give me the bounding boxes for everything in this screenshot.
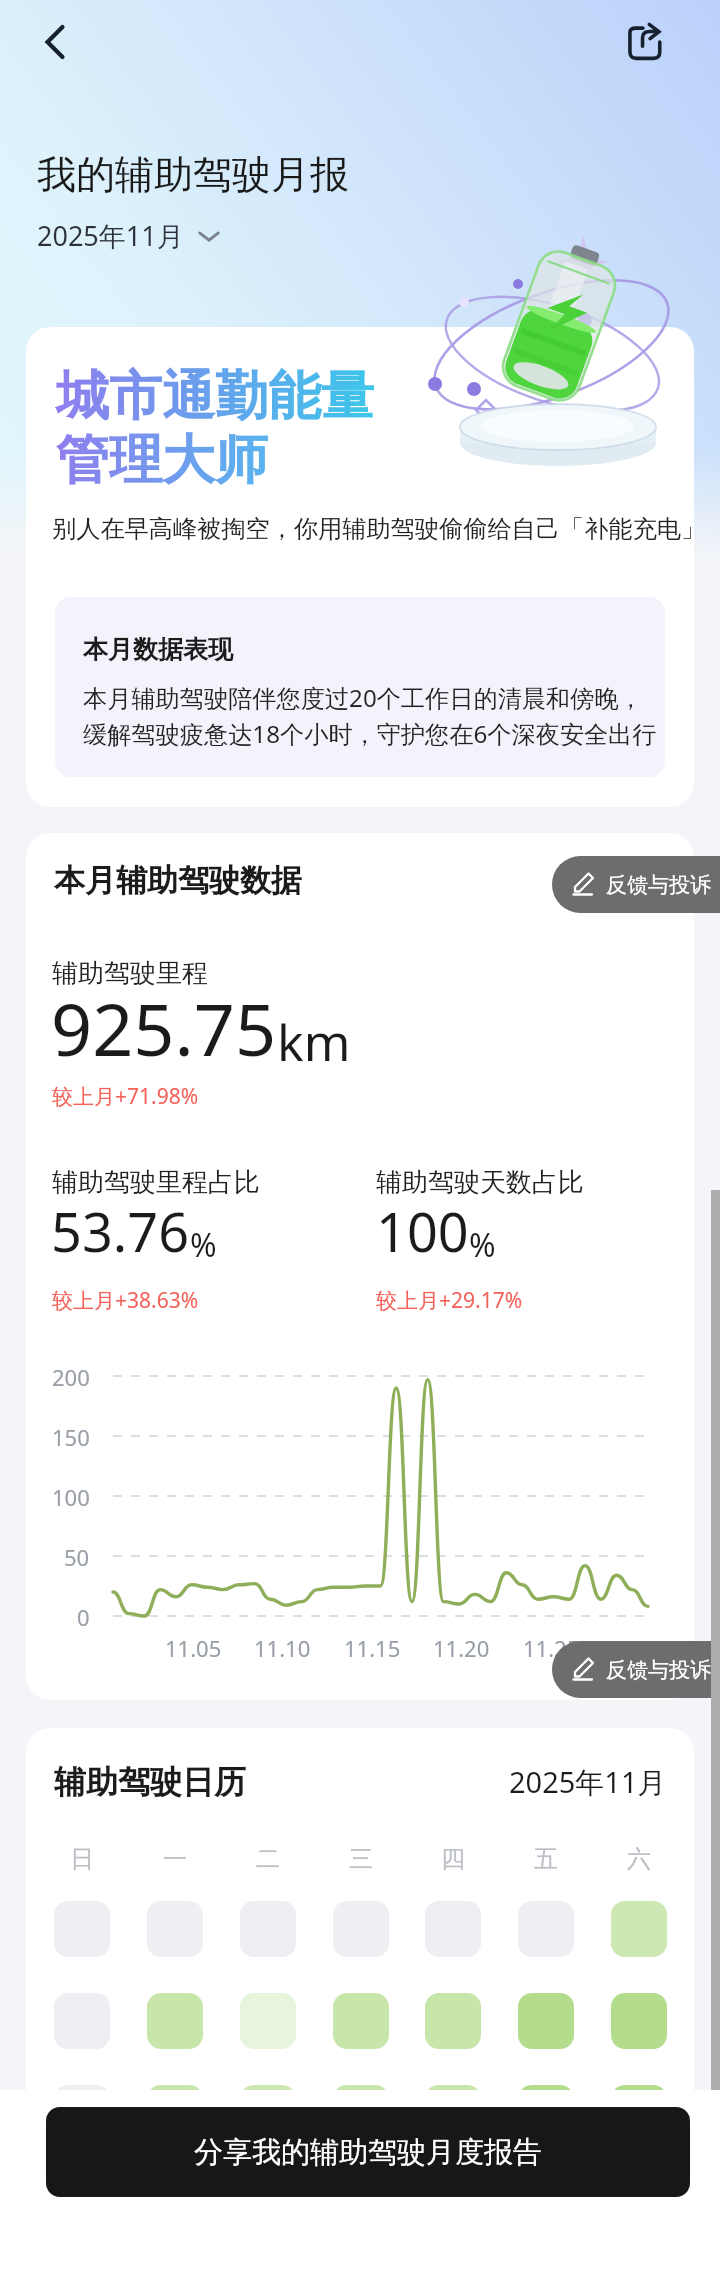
staticText: km <box>277 1008 351 1076</box>
staticText: 二 <box>256 1844 280 1874</box>
staticText: 管理大师 <box>56 427 268 494</box>
button[interactable] <box>518 1993 574 2049</box>
staticText: 缓解驾驶疲惫达18个小时，守护您在6个深夜安全出行 <box>83 717 657 750</box>
staticText: 11.15 <box>344 1633 401 1663</box>
staticText: 反馈与投诉 <box>606 1657 711 1683</box>
button[interactable] <box>333 1901 389 1957</box>
staticText: 925.75 <box>51 979 277 1077</box>
staticText: 本月数据表现 <box>83 634 233 665</box>
button[interactable] <box>240 1993 296 2049</box>
button[interactable] <box>333 1993 389 2049</box>
button[interactable] <box>147 2085 203 2141</box>
staticText: 较上月+38.63% <box>52 1286 199 1315</box>
staticText: 分享我的辅助驾驶月度报告 <box>194 2134 542 2171</box>
staticText: 11.20 <box>433 1633 490 1663</box>
staticText: 较上月+71.98% <box>52 1082 199 1111</box>
button[interactable]: Back <box>25 12 85 72</box>
staticText: 11.25 <box>523 1633 580 1663</box>
staticText: 较上月+29.17% <box>376 1286 523 1315</box>
button[interactable] <box>518 2085 574 2141</box>
staticText: 11.30 <box>612 1633 669 1663</box>
staticText: 四 <box>441 1844 465 1874</box>
staticText: 本月辅助驾驶陪伴您度过20个工作日的清晨和傍晚， <box>83 681 643 714</box>
staticText: 日 <box>70 1844 94 1874</box>
button[interactable] <box>611 1901 667 1957</box>
staticText: 11.05 <box>165 1633 222 1663</box>
button[interactable]: 反馈与投诉 <box>552 856 720 913</box>
button[interactable]: 反馈与投诉 <box>552 1641 720 1698</box>
staticText: 100 <box>376 1194 469 1268</box>
staticText: 本月辅助驾驶数据 <box>54 861 302 900</box>
staticText: 一 <box>163 1844 187 1874</box>
staticText: 200 <box>52 1362 90 1392</box>
staticText: 辅助驾驶日历 <box>54 1762 246 1802</box>
staticText: 50 <box>64 1542 90 1572</box>
staticText: 150 <box>52 1422 90 1452</box>
button[interactable] <box>54 2085 110 2141</box>
staticText: 辅助驾驶天数占比 <box>376 1166 584 1199</box>
staticText: 0 <box>77 1602 90 1632</box>
button[interactable] <box>611 1993 667 2049</box>
button[interactable] <box>518 1901 574 1957</box>
button[interactable] <box>425 1901 481 1957</box>
button[interactable] <box>240 1901 296 1957</box>
button[interactable] <box>425 2085 481 2141</box>
staticText: % <box>190 1223 217 1267</box>
staticText: 反馈与投诉 <box>606 872 711 898</box>
button[interactable] <box>147 1993 203 2049</box>
staticText: 六 <box>627 1844 651 1874</box>
button[interactable] <box>611 2085 667 2141</box>
staticText: 三 <box>349 1844 373 1874</box>
staticText: 辅助驾驶里程 <box>52 957 208 990</box>
staticText: 53.76 <box>51 1194 190 1268</box>
button[interactable] <box>54 1901 110 1957</box>
staticText: 2025年11月 <box>509 1762 667 1802</box>
staticText: 城市通勤能量 <box>56 363 374 430</box>
button[interactable] <box>54 1993 110 2049</box>
staticText: 别人在早高峰被掏空，你用辅助驾驶偷偷给自己「补能充电」 <box>52 514 694 544</box>
button[interactable] <box>425 1993 481 2049</box>
button[interactable] <box>333 2085 389 2141</box>
staticText: 辅助驾驶里程占比 <box>52 1166 260 1199</box>
staticText: 2025年11月 <box>37 217 184 254</box>
staticText: 11.10 <box>254 1633 311 1663</box>
button[interactable]: Share <box>620 14 676 70</box>
button[interactable]: 2025年11月 <box>37 217 222 254</box>
button[interactable]: 分享我的辅助驾驶月度报告 <box>46 2107 690 2197</box>
button[interactable] <box>147 1901 203 1957</box>
staticText: 五 <box>534 1844 558 1874</box>
staticText: % <box>469 1223 496 1267</box>
staticText: 100 <box>52 1482 90 1512</box>
button[interactable] <box>240 2085 296 2141</box>
staticText: 我的辅助驾驶月报 <box>37 150 349 199</box>
